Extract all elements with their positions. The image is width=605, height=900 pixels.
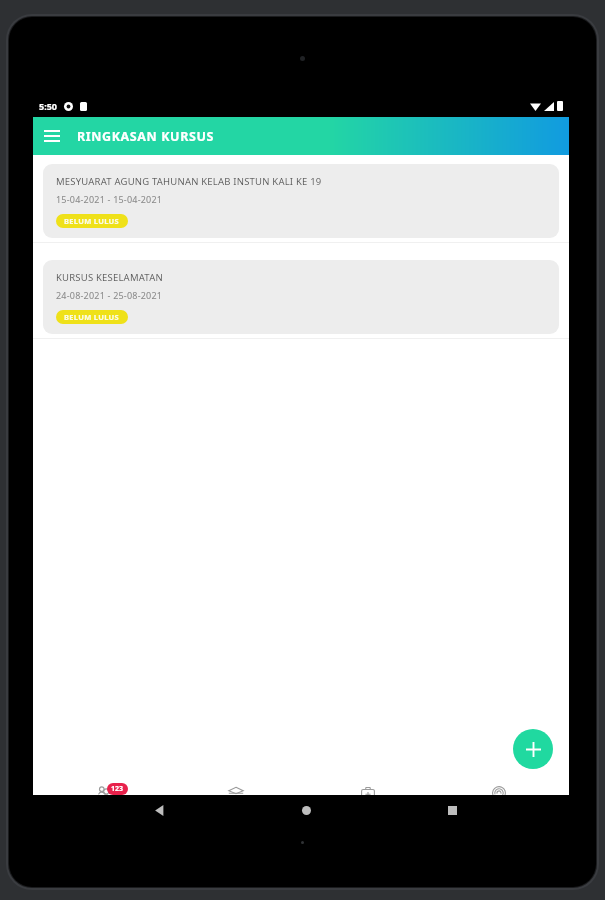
staticText: KURSUS KESELAMATAN xyxy=(56,271,163,284)
button[interactable]: 123 xyxy=(44,779,164,817)
staticText: 24-08-2021 - 25-08-2021 xyxy=(56,289,163,301)
staticText: BELUM LULUS xyxy=(64,216,120,226)
button[interactable]: Open navigation menu xyxy=(33,117,71,155)
button[interactable]: Home xyxy=(286,795,326,825)
staticText: 15-04-2021 - 15-04-2021 xyxy=(56,193,163,205)
staticText: MESYUARAT AGUNG TAHUNAN KELAB INSTUN KAL… xyxy=(56,175,322,188)
button[interactable]: KURSUS KESELAMATAN xyxy=(43,260,559,334)
staticText: BELUM LULUS xyxy=(64,312,120,322)
staticText: RINGKASAN KURSUS xyxy=(77,128,214,145)
staticText: 123 xyxy=(111,784,124,794)
button[interactable]: CUTI xyxy=(307,779,427,817)
button[interactable]: Add course xyxy=(513,729,553,769)
button[interactable]: MESYUARAT AGUNG TAHUNAN KELAB INSTUN KAL… xyxy=(43,164,559,238)
button[interactable]: STATUS READER xyxy=(438,779,558,817)
button[interactable]: KURSUS xyxy=(175,779,295,817)
staticText: 5:50 xyxy=(39,100,57,112)
button[interactable]: Recent apps xyxy=(432,795,472,825)
button[interactable]: Back xyxy=(139,795,179,825)
